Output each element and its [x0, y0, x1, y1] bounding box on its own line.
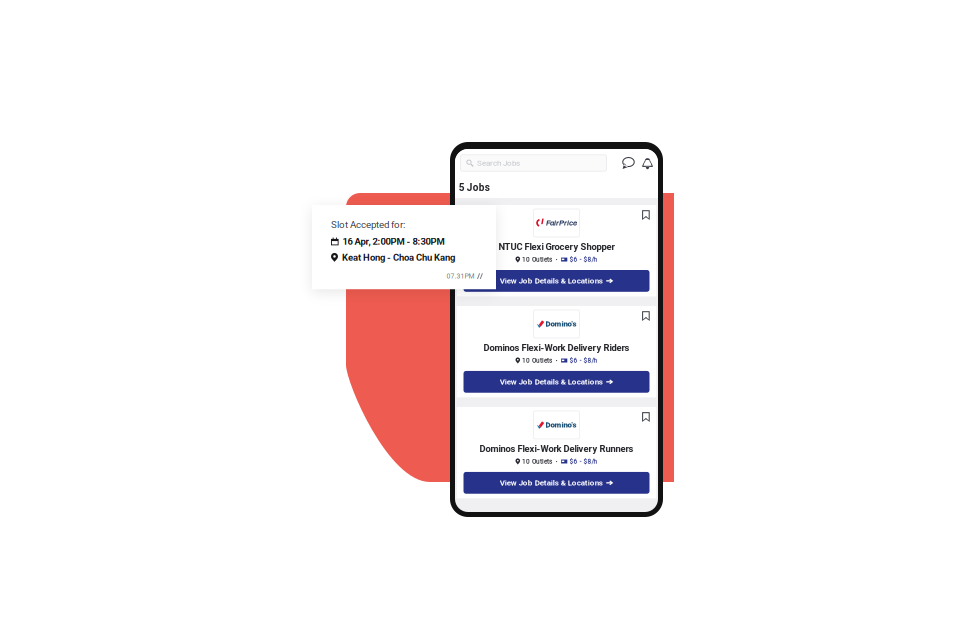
staticText: 10 Outlets: [522, 458, 552, 465]
button[interactable]: View Job Details & Locations: [463, 472, 649, 494]
staticText: Dominos Flexi-Work Delivery Riders: [483, 342, 629, 353]
staticText: FairPrice: [546, 219, 577, 227]
staticText: Slot Accepted for:: [331, 219, 405, 230]
staticText: ·: [556, 356, 558, 365]
staticText: 10 Outlets: [522, 357, 552, 364]
staticText: View Job Details & Locations: [500, 377, 603, 387]
staticText: Search Jobs: [477, 158, 520, 168]
staticText: ·: [556, 457, 558, 466]
staticText: Domino's: [546, 420, 577, 429]
button[interactable]: Notifications: [638, 152, 657, 173]
button[interactable]: Messages: [619, 152, 638, 173]
staticText: View Job Details & Locations: [500, 478, 603, 487]
staticText: Keat Hong - Choa Chu Kang: [342, 252, 455, 263]
staticText: NTUC Flexi Grocery Shopper: [498, 241, 614, 252]
button[interactable]: Save job: [637, 411, 656, 427]
staticText: $6 - $8/h: [569, 357, 597, 364]
button[interactable]: View Job Details & Locations: [463, 371, 649, 393]
button[interactable]: Save job: [637, 310, 656, 326]
staticText: 16 Apr, 2:00PM - 8:30PM: [343, 236, 445, 247]
staticText: 07.31PM: [446, 272, 474, 280]
staticText: Dominos Flexi-Work Delivery Runners: [479, 443, 633, 454]
button[interactable]: Save job: [637, 209, 656, 225]
staticText: 10 Outlets: [522, 256, 552, 263]
button[interactable]: View Job Details & Locations: [463, 270, 649, 292]
staticText: View Job Details & Locations: [500, 276, 603, 286]
staticText: 5 Jobs: [459, 182, 490, 193]
staticText: $6 - $8/h: [569, 256, 597, 263]
staticText: ·: [556, 255, 558, 264]
staticText: $6 - $8/h: [569, 458, 597, 465]
staticText: Domino's: [546, 319, 577, 328]
